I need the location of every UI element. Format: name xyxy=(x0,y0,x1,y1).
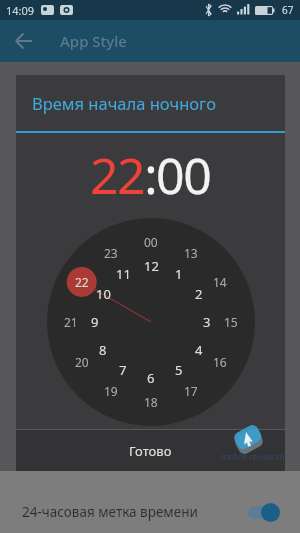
staticText: 8 xyxy=(99,341,107,359)
staticText: 14:09 xyxy=(6,3,35,18)
staticText: 18 xyxy=(144,394,158,410)
staticText: 19 xyxy=(104,383,118,399)
staticText: 23 xyxy=(104,245,118,261)
staticText: 00 xyxy=(144,234,158,250)
staticText: 1 xyxy=(175,265,183,283)
staticText: 21 xyxy=(64,314,78,330)
staticText: 20 xyxy=(75,354,89,370)
button[interactable]: 24-часовая метка времени xyxy=(22,502,280,522)
staticText: 12 xyxy=(144,257,159,275)
button[interactable] xyxy=(248,502,280,522)
staticText: 67 xyxy=(282,3,294,17)
staticText: 24-часовая метка времени xyxy=(22,503,198,521)
button[interactable]: Готово xyxy=(16,430,285,471)
staticText: 9 xyxy=(91,313,99,331)
staticText: App Style xyxy=(60,31,127,51)
staticText: Готово xyxy=(129,442,172,460)
staticText: 2 xyxy=(195,285,203,303)
staticText: 10 xyxy=(96,285,111,303)
staticText: 22 xyxy=(75,274,89,290)
staticText: 4 xyxy=(195,341,203,359)
staticText: 22:00 xyxy=(90,141,211,205)
staticText: 3 xyxy=(203,313,211,331)
staticText: 6 xyxy=(147,369,155,387)
staticText: 16 xyxy=(213,354,227,370)
staticText: 13 xyxy=(184,245,198,261)
staticText: mobile-review.com xyxy=(221,451,292,462)
staticText: 15 xyxy=(224,314,238,330)
button[interactable] xyxy=(0,20,48,62)
staticText: 14 xyxy=(213,274,227,290)
staticText: 5 xyxy=(175,361,183,379)
staticText: 11 xyxy=(116,265,131,283)
staticText: 17 xyxy=(184,383,198,399)
staticText: 7 xyxy=(119,361,127,379)
staticText: Время начала ночного xyxy=(32,92,216,114)
